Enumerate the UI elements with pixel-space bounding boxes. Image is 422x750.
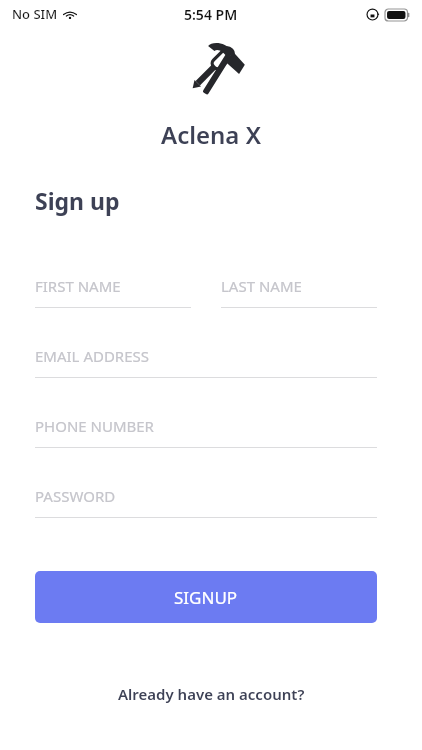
staticText: PHONE NUMBER	[35, 416, 154, 436]
staticText: Sign up	[35, 185, 120, 216]
button[interactable]: Already have an account?	[98, 676, 325, 712]
other: Aclena X logo	[175, 34, 247, 106]
button[interactable]: LAST NAME	[221, 276, 377, 308]
staticText: Already have an account?	[118, 684, 305, 704]
button[interactable]: FIRST NAME	[35, 276, 191, 308]
staticText: PASSWORD	[35, 486, 116, 506]
button[interactable]: SIGNUP	[35, 571, 377, 623]
button[interactable]: EMAIL ADDRESS	[35, 346, 377, 378]
staticText: EMAIL ADDRESS	[35, 346, 150, 366]
button[interactable]: PHONE NUMBER	[35, 416, 377, 448]
staticText: FIRST NAME	[35, 276, 121, 296]
staticText: 5:54 PM	[184, 5, 238, 24]
button[interactable]: PASSWORD	[35, 486, 377, 518]
staticText: SIGNUP	[174, 586, 238, 609]
staticText: Aclena X	[161, 118, 261, 151]
staticText: LAST NAME	[221, 276, 302, 296]
staticText: No SIM	[12, 5, 58, 23]
